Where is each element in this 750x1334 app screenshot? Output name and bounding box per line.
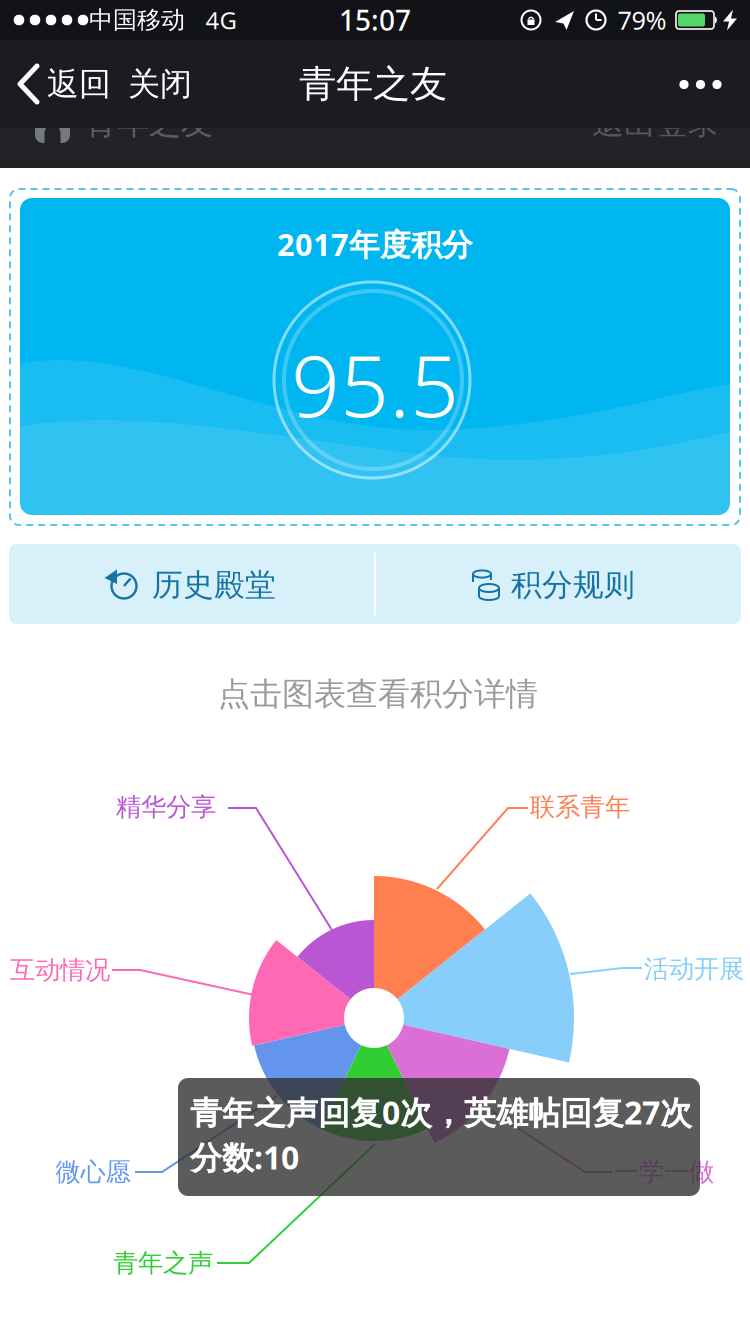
- button[interactable]: 积分规则: [376, 544, 740, 624]
- staticText: 4G: [205, 4, 236, 36]
- staticText: 活动开展: [644, 953, 744, 984]
- staticText: 点击图表查看积分详情: [218, 674, 538, 714]
- staticText: 关闭: [128, 64, 192, 104]
- button[interactable]: 返回: [0, 40, 130, 128]
- staticText: 95.5: [291, 327, 459, 441]
- staticText: 青年之声回复0次，英雄帖回复27次: [190, 1091, 692, 1133]
- staticText: 互动情况: [10, 954, 110, 985]
- button[interactable]: 历史殿堂: [10, 544, 374, 624]
- button[interactable]: 退出登录: [571, 96, 741, 150]
- staticText: 中国移动: [89, 5, 185, 35]
- staticText: 青年之友: [299, 61, 447, 107]
- staticText: 2017年度积分: [277, 224, 473, 264]
- staticText: 退出登录: [592, 103, 720, 143]
- button[interactable]: More: [665, 40, 735, 128]
- staticText: 微心愿: [55, 1156, 130, 1187]
- staticText: 一学一做: [614, 1156, 714, 1187]
- staticText: 精华分享: [116, 791, 216, 822]
- staticText: 历史殿堂: [152, 566, 276, 604]
- staticText: 分数:10: [190, 1136, 299, 1178]
- staticText: 青年之声: [113, 1247, 213, 1278]
- button[interactable]: 积分图表: [169, 813, 579, 1223]
- staticText: 返回: [47, 64, 111, 104]
- staticText: 积分规则: [511, 566, 635, 604]
- staticText: 青年之友: [85, 103, 213, 143]
- staticText: 15:07: [339, 1, 411, 39]
- staticText: 79%: [617, 3, 666, 37]
- staticText: 联系青年: [530, 791, 630, 822]
- button[interactable]: 关闭: [112, 40, 208, 128]
